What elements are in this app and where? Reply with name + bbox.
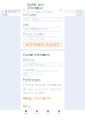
button[interactable]: Close: [59, 9, 62, 12]
staticText: Address: [23, 59, 34, 62]
button[interactable]: Home: [20, 109, 31, 115]
staticText: Manage notifications: [23, 97, 51, 100]
button[interactable]: Verification required: [23, 42, 62, 47]
staticText: Preferences: [23, 79, 40, 82]
staticText: Choose how we contact you: [23, 83, 62, 87]
button[interactable]: Manage notifications: [20, 97, 53, 103]
staticText: Phone number: [23, 33, 45, 36]
staticText: Alerts: [46, 113, 50, 114]
staticText: Jane Harper: [24, 18, 40, 21]
button[interactable]: More: [53, 109, 64, 115]
staticText: Contact information: [23, 53, 50, 57]
staticText: US: [24, 73, 27, 76]
button[interactable]: Search: [31, 109, 42, 115]
staticText: Settings: [5, 10, 16, 13]
staticText: We will only send important account upda…: [23, 88, 62, 95]
staticText: Home: [24, 113, 28, 114]
button[interactable]: Alerts: [42, 109, 53, 115]
staticText: Email: [23, 23, 29, 26]
staticText: 24 Willow Lane: [24, 63, 45, 66]
staticText: jane@example.com: [24, 27, 48, 31]
staticText: Menu: [23, 105, 31, 108]
staticText: Keep your details current: [27, 10, 52, 17]
staticText: Search: [34, 113, 40, 114]
staticText: edit: [77, 13, 83, 16]
staticText: Country: [23, 68, 34, 72]
staticText: Full name: [23, 13, 36, 17]
staticText: Update your information: [27, 3, 44, 10]
staticText: +1 555 0134: [24, 37, 44, 41]
staticText: back: [2, 13, 7, 16]
staticText: More: [57, 113, 61, 114]
staticText: Profile: [17, 10, 27, 13]
staticText: Optional region field: [35, 69, 58, 76]
staticText: Verification required: [29, 43, 59, 46]
staticText: more: [76, 10, 83, 13]
